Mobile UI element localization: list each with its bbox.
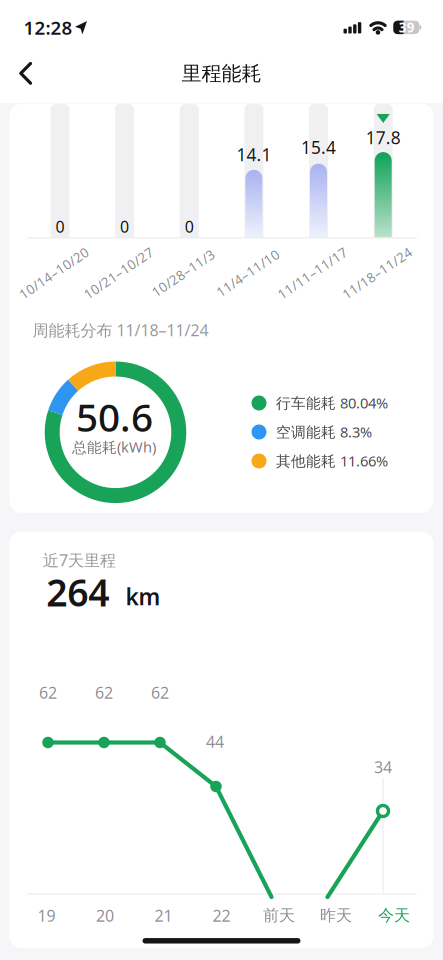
staticText: 空调能耗 8.3% <box>276 422 372 441</box>
staticText: km <box>125 581 160 611</box>
staticText: 11/18–11/24 <box>337 264 418 282</box>
staticText: 总能耗(kWh) <box>72 437 156 457</box>
staticText: 21 <box>154 905 172 926</box>
staticText: 264 <box>46 567 109 617</box>
staticText: 12:28 <box>23 15 72 40</box>
staticText: 44 <box>206 731 224 752</box>
staticText: 11/11–11/17 <box>272 264 353 282</box>
staticText: 0 <box>55 216 64 237</box>
staticText: 11/4–11/10 <box>211 264 284 282</box>
staticText: 62 <box>95 682 113 703</box>
staticText: 39 <box>399 18 415 36</box>
staticText: 其他能耗 11.66% <box>276 451 388 470</box>
staticText: 10/21–10/27 <box>78 264 159 282</box>
staticText: 0 <box>120 216 129 237</box>
staticText: 近7天里程 <box>43 549 116 571</box>
staticText: 17.8 <box>366 126 401 149</box>
staticText: 20 <box>96 905 114 926</box>
staticText: 周能耗分布 11/18–11/24 <box>32 319 208 341</box>
staticText: 62 <box>39 682 57 703</box>
staticText: 50.6 <box>76 391 153 442</box>
staticText: 10/28–11/3 <box>147 264 220 282</box>
staticText: 今天 <box>378 906 410 925</box>
staticText: 里程能耗 <box>181 61 261 86</box>
staticText: 10/14–10/20 <box>13 264 94 282</box>
staticText: 14.1 <box>236 143 271 166</box>
staticText: 行车能耗 80.04% <box>276 393 388 412</box>
staticText: 22 <box>212 905 230 926</box>
staticText: 34 <box>374 756 392 778</box>
staticText: 昨天 <box>320 906 352 925</box>
staticText: 19 <box>37 905 55 926</box>
staticText: 前天 <box>263 906 295 925</box>
staticText: 15.4 <box>301 136 336 159</box>
staticText: 0 <box>185 216 194 237</box>
staticText: 62 <box>151 682 169 703</box>
